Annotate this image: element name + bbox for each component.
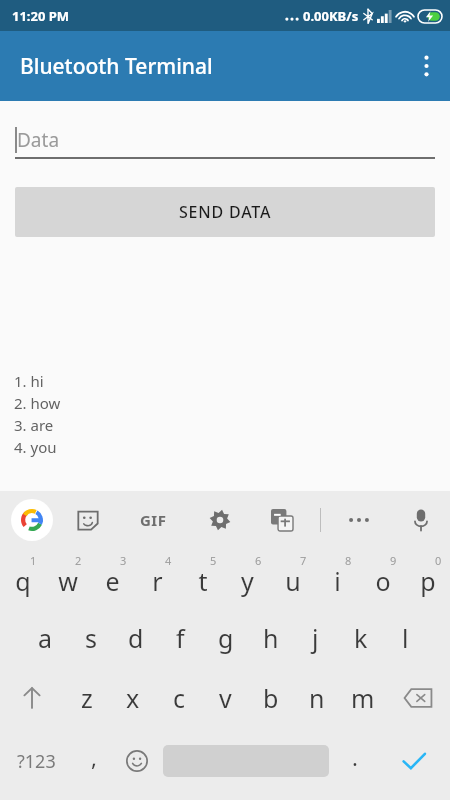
button[interactable]: a (22, 608, 68, 668)
button[interactable]: y (225, 548, 270, 608)
button[interactable]: , (72, 728, 115, 794)
staticText: c (173, 681, 186, 715)
staticText: 4. you (14, 437, 57, 457)
button[interactable]: d (113, 608, 158, 668)
staticText: h (263, 621, 279, 655)
staticText: z (81, 681, 93, 715)
staticText: 4 (165, 553, 172, 568)
button[interactable]: e (90, 548, 135, 608)
button[interactable]: i (315, 548, 360, 608)
staticText: i (334, 564, 341, 598)
button[interactable]: v (202, 668, 248, 728)
staticText: GIF (140, 510, 167, 530)
staticText: 9 (390, 553, 397, 568)
button[interactable]: Google search (11, 499, 53, 541)
button[interactable]: f (158, 608, 203, 668)
button[interactable]: j (293, 608, 338, 668)
staticText: s (85, 621, 97, 655)
button[interactable]: l (383, 608, 428, 668)
staticText: e (105, 564, 120, 598)
button[interactable]: h (248, 608, 293, 668)
staticText: p (420, 564, 436, 598)
staticText: u (285, 564, 301, 598)
staticText: q (15, 564, 31, 598)
staticText: y (241, 564, 254, 598)
button[interactable]: c (156, 668, 202, 728)
button[interactable]: g (203, 608, 248, 668)
staticText: r (152, 564, 163, 598)
staticText: a (38, 621, 53, 655)
staticText: j (312, 621, 319, 655)
staticText: b (263, 681, 279, 715)
staticText: . (352, 742, 358, 772)
staticText: ?123 (17, 749, 56, 774)
button[interactable]: n (294, 668, 340, 728)
button[interactable]: Settings (198, 498, 242, 542)
button[interactable]: p (405, 548, 450, 608)
staticText: m (351, 681, 375, 715)
staticText: 0 (435, 553, 442, 568)
staticText: 1 (30, 553, 37, 568)
staticText: n (309, 681, 325, 715)
staticText: , (91, 742, 97, 772)
staticText: Data (17, 127, 60, 153)
button[interactable]: GIF (130, 497, 176, 543)
staticText: 11:20 PM (12, 7, 70, 25)
staticText: 2 (75, 553, 82, 568)
staticText: f (176, 621, 185, 655)
button[interactable]: x (110, 668, 156, 728)
staticText: SEND DATA (179, 201, 272, 223)
staticText: l (402, 621, 409, 655)
button[interactable]: More keyboard options (338, 499, 380, 541)
button[interactable]: t (180, 548, 225, 608)
staticText: 3. are (14, 415, 54, 435)
button[interactable]: Enter (377, 728, 450, 794)
button[interactable]: k (338, 608, 383, 668)
button[interactable]: o (360, 548, 405, 608)
staticText: x (126, 681, 140, 715)
staticText: 3 (120, 553, 127, 568)
staticText: k (354, 621, 368, 655)
button[interactable]: z (64, 668, 110, 728)
staticText: Bluetooth Terminal (20, 52, 213, 81)
button[interactable]: Stickers (68, 500, 108, 540)
staticText: t (198, 564, 208, 598)
button[interactable]: r (135, 548, 180, 608)
button[interactable]: . (333, 728, 377, 794)
button[interactable]: More options (402, 42, 450, 90)
staticText: 0.00KB/s (303, 7, 359, 25)
staticText: v (219, 681, 232, 715)
button[interactable]: s (68, 608, 113, 668)
button[interactable]: ?123 (0, 728, 72, 794)
button[interactable]: Emoji (115, 728, 159, 794)
staticText: 5 (210, 553, 217, 568)
staticText: g (218, 621, 234, 655)
button[interactable]: u (270, 548, 315, 608)
button[interactable]: q (0, 548, 45, 608)
staticText: 7 (300, 553, 307, 568)
staticText: o (375, 564, 391, 598)
button[interactable]: w (45, 548, 90, 608)
button[interactable]: m (340, 668, 386, 728)
staticText: 1. hi (14, 371, 44, 391)
staticText: w (58, 564, 78, 598)
button[interactable]: Voice input (400, 499, 442, 541)
staticText: 2. how (14, 393, 61, 413)
button[interactable]: Translate (261, 499, 303, 541)
staticText: d (128, 621, 144, 655)
button[interactable]: Shift (0, 668, 64, 728)
button[interactable]: SEND DATA (15, 187, 435, 237)
staticText: 8 (345, 553, 352, 568)
staticText: 6 (255, 553, 262, 568)
button[interactable]: Backspace (386, 668, 450, 728)
button[interactable]: b (248, 668, 294, 728)
button[interactable]: Data (15, 121, 435, 159)
